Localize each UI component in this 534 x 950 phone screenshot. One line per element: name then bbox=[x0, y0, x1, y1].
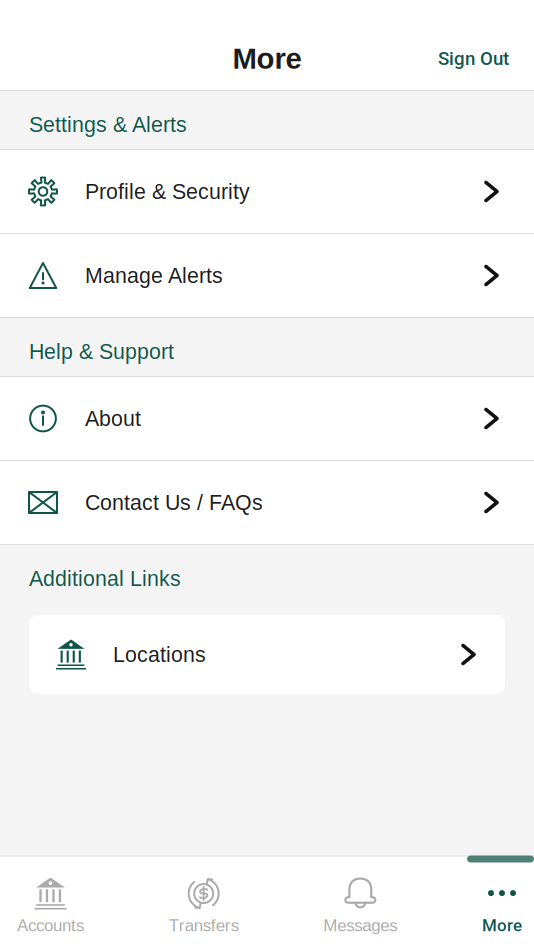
button[interactable]: Locations bbox=[29, 615, 505, 694]
button[interactable]: Profile & Security bbox=[0, 150, 534, 233]
button[interactable]: Sign Out bbox=[422, 36, 534, 81]
staticText: Profile & Security bbox=[85, 180, 250, 203]
staticText: Sign Out bbox=[438, 48, 509, 69]
button[interactable]: Accounts bbox=[17, 856, 84, 950]
staticText: About bbox=[85, 407, 141, 430]
staticText: Contact Us / FAQs bbox=[85, 491, 263, 514]
staticText: Manage Alerts bbox=[85, 264, 223, 287]
button[interactable]: Manage Alerts bbox=[0, 234, 534, 317]
staticText: Messages bbox=[323, 916, 397, 935]
staticText: More bbox=[232, 42, 301, 75]
button[interactable]: Contact Us / FAQs bbox=[0, 461, 534, 544]
button[interactable]: About bbox=[0, 377, 534, 460]
staticText: Additional Links bbox=[29, 567, 181, 590]
staticText: Help & Support bbox=[29, 340, 174, 363]
staticText: More bbox=[482, 916, 522, 935]
staticText: Accounts bbox=[17, 916, 84, 935]
staticText: Locations bbox=[113, 643, 206, 666]
button[interactable]: Messages bbox=[323, 856, 397, 950]
staticText: Settings & Alerts bbox=[29, 113, 187, 136]
staticText: Transfers bbox=[169, 916, 239, 935]
button[interactable]: More bbox=[482, 856, 522, 950]
button[interactable]: Transfers bbox=[169, 856, 239, 950]
